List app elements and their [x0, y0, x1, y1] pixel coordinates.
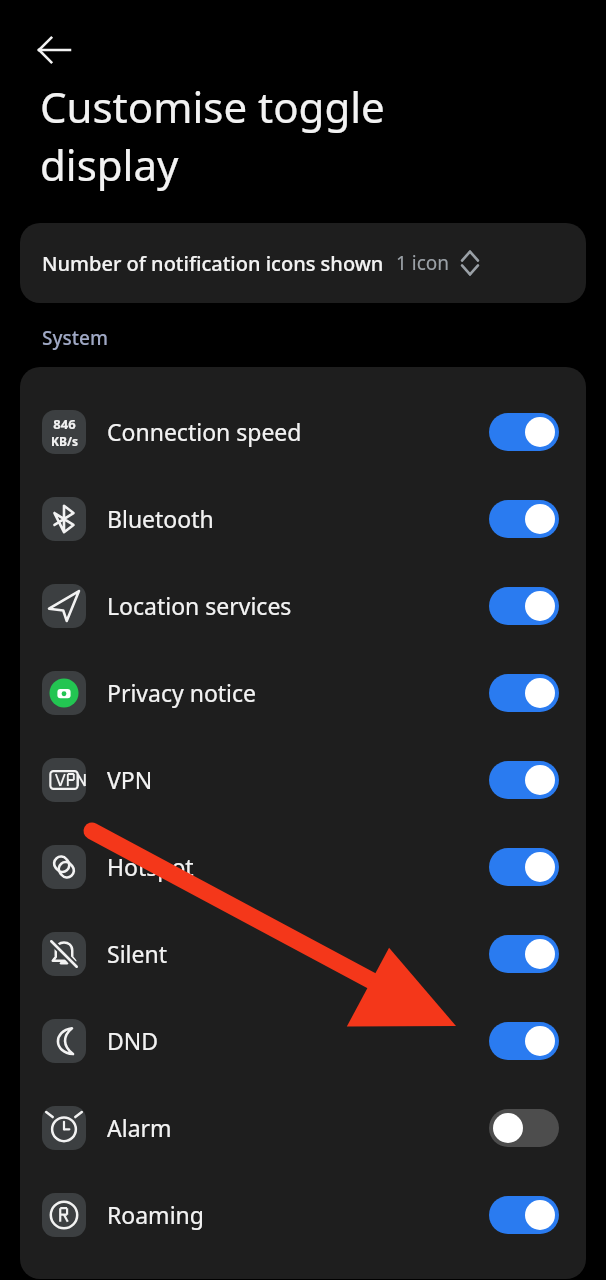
staticText: Alarm [107, 1112, 172, 1143]
staticText: VPN [107, 764, 153, 795]
button[interactable]: 846 [20, 388, 586, 475]
staticText: Location services [107, 590, 292, 621]
button[interactable]: On [489, 500, 559, 538]
staticText: 846 [53, 415, 76, 433]
button[interactable]: On [489, 1022, 559, 1060]
staticText: KB/s [51, 433, 78, 449]
staticText: System [42, 325, 108, 351]
staticText: Silent [107, 938, 167, 969]
button[interactable]: On [489, 848, 559, 886]
button[interactable]: Location services [20, 562, 586, 649]
staticText: Hotspot [107, 851, 194, 882]
button[interactable]: On [489, 761, 559, 799]
staticText: Number of notification icons shown [42, 250, 384, 277]
button[interactable]: Roaming [20, 1171, 586, 1258]
button[interactable]: On [489, 413, 559, 451]
staticText: Connection speed [107, 416, 302, 447]
staticText: 1 icon [396, 250, 450, 276]
button[interactable]: Number of notification icons shown [20, 223, 586, 303]
button[interactable]: Privacy notice [20, 649, 586, 736]
staticText: Privacy notice [107, 677, 257, 708]
button[interactable]: On [489, 587, 559, 625]
button[interactable]: Alarm [20, 1084, 586, 1171]
staticText: DND [107, 1025, 159, 1056]
button[interactable]: On [489, 935, 559, 973]
button[interactable]: On [489, 674, 559, 712]
button[interactable]: VPN [20, 736, 586, 823]
staticText: Customise toggle display [40, 78, 456, 193]
staticText: Bluetooth [107, 503, 214, 534]
button[interactable]: Hotspot [20, 823, 586, 910]
button[interactable]: On [489, 1196, 559, 1234]
button[interactable]: Off [489, 1109, 559, 1147]
button[interactable]: Bluetooth [20, 475, 586, 562]
button[interactable]: Back [26, 22, 82, 78]
button[interactable]: Silent [20, 910, 586, 997]
button[interactable]: DND [20, 997, 586, 1084]
staticText: Roaming [107, 1199, 204, 1230]
